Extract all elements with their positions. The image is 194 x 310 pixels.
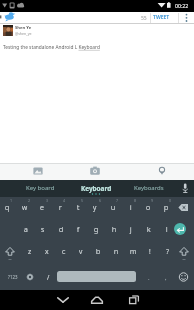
- button[interactable]: Key board: [16, 181, 64, 195]
- button[interactable]: [122, 290, 144, 310]
- button[interactable]: j: [123, 222, 139, 238]
- button[interactable]: o: [140, 200, 156, 216]
- staticText: q: [5, 203, 10, 213]
- staticText: 8: [134, 198, 137, 203]
- button[interactable]: m: [125, 244, 141, 260]
- staticText: Key board: [26, 184, 55, 192]
- button[interactable]: [85, 163, 105, 180]
- staticText: ?: [166, 247, 169, 257]
- button[interactable]: z: [22, 244, 38, 260]
- button[interactable]: x: [39, 244, 55, 260]
- staticText: ,: [165, 274, 167, 282]
- button[interactable]: [2, 244, 18, 262]
- button[interactable]: /: [41, 270, 55, 284]
- staticText: Testing the standalone Android L Keyboar…: [3, 44, 100, 51]
- staticText: 3: [46, 198, 49, 203]
- staticText: k: [147, 225, 151, 235]
- button[interactable]: i: [123, 200, 139, 216]
- staticText: ?123: [8, 274, 18, 280]
- staticText: Shen Ye: [15, 25, 32, 31]
- button[interactable]: b: [90, 244, 106, 260]
- staticText: d: [59, 225, 64, 235]
- staticText: 9: [151, 198, 154, 203]
- staticText: y: [93, 203, 97, 213]
- button[interactable]: n: [108, 244, 124, 260]
- staticText: m: [130, 247, 137, 257]
- button[interactable]: f: [70, 222, 86, 238]
- staticText: 00:22: [175, 2, 189, 9]
- staticText: c: [62, 247, 66, 257]
- button[interactable]: q: [0, 200, 15, 216]
- button[interactable]: [57, 271, 136, 282]
- button[interactable]: v: [73, 244, 89, 260]
- staticText: a: [24, 225, 28, 235]
- button[interactable]: h: [106, 222, 122, 238]
- staticText: w: [22, 203, 28, 213]
- staticText: 6: [99, 198, 102, 203]
- staticText: n: [114, 247, 119, 257]
- button[interactable]: [180, 12, 194, 24]
- button[interactable]: l: [159, 222, 175, 238]
- button[interactable]: ?: [160, 244, 174, 260]
- staticText: Keyboard: [81, 184, 112, 193]
- staticText: g: [94, 225, 99, 235]
- button[interactable]: [152, 163, 172, 180]
- button[interactable]: [176, 244, 192, 262]
- staticText: 5: [81, 198, 84, 203]
- button[interactable]: r: [52, 200, 68, 216]
- staticText: u: [111, 203, 116, 213]
- button[interactable]: [174, 223, 186, 235]
- staticText: e: [40, 203, 44, 213]
- button[interactable]: Keyboard: [72, 181, 120, 195]
- staticText: 2: [28, 198, 31, 203]
- staticText: x: [45, 247, 49, 257]
- staticText: 55: [141, 15, 147, 22]
- button[interactable]: !: [143, 244, 157, 260]
- staticText: t: [77, 203, 80, 213]
- button[interactable]: e: [34, 200, 50, 216]
- button[interactable]: ,: [160, 271, 172, 285]
- staticText: h: [112, 225, 117, 235]
- button[interactable]: y: [87, 200, 103, 216]
- staticText: z: [28, 247, 32, 257]
- button[interactable]: k: [141, 222, 157, 238]
- button[interactable]: [175, 269, 192, 285]
- button[interactable]: [175, 199, 193, 215]
- button[interactable]: Keyboards: [125, 181, 173, 195]
- button[interactable]: [52, 290, 74, 310]
- button[interactable]: t: [70, 200, 86, 216]
- staticText: 4: [63, 198, 66, 203]
- staticText: .: [148, 274, 150, 282]
- button[interactable]: s: [35, 222, 51, 238]
- button[interactable]: [22, 269, 38, 285]
- button[interactable]: d: [53, 222, 69, 238]
- button[interactable]: [3, 25, 13, 36]
- staticText: !: [149, 247, 151, 257]
- button[interactable]: .: [143, 271, 155, 285]
- button[interactable]: [0, 11, 24, 24]
- button[interactable]: g: [88, 222, 104, 238]
- staticText: p: [164, 203, 169, 213]
- staticText: @shen_ye: [15, 31, 32, 36]
- button[interactable]: w: [17, 200, 33, 216]
- staticText: s: [41, 225, 45, 235]
- staticText: 7: [116, 198, 119, 203]
- staticText: l: [166, 225, 168, 235]
- staticText: r: [59, 203, 62, 213]
- button[interactable]: p: [158, 200, 174, 216]
- staticText: f: [77, 225, 80, 235]
- button[interactable]: a: [18, 222, 34, 238]
- staticText: 1: [10, 198, 13, 203]
- button[interactable]: [28, 163, 48, 180]
- button[interactable]: TWEET: [148, 12, 174, 23]
- staticText: 0: [169, 198, 172, 203]
- button[interactable]: [177, 180, 194, 197]
- staticText: /: [47, 273, 50, 282]
- staticText: b: [96, 247, 101, 257]
- staticText: i: [130, 203, 132, 213]
- button[interactable]: u: [105, 200, 121, 216]
- button[interactable]: [86, 290, 108, 310]
- staticText: o: [146, 203, 151, 213]
- button[interactable]: c: [56, 244, 72, 260]
- button[interactable]: ?123: [4, 271, 22, 283]
